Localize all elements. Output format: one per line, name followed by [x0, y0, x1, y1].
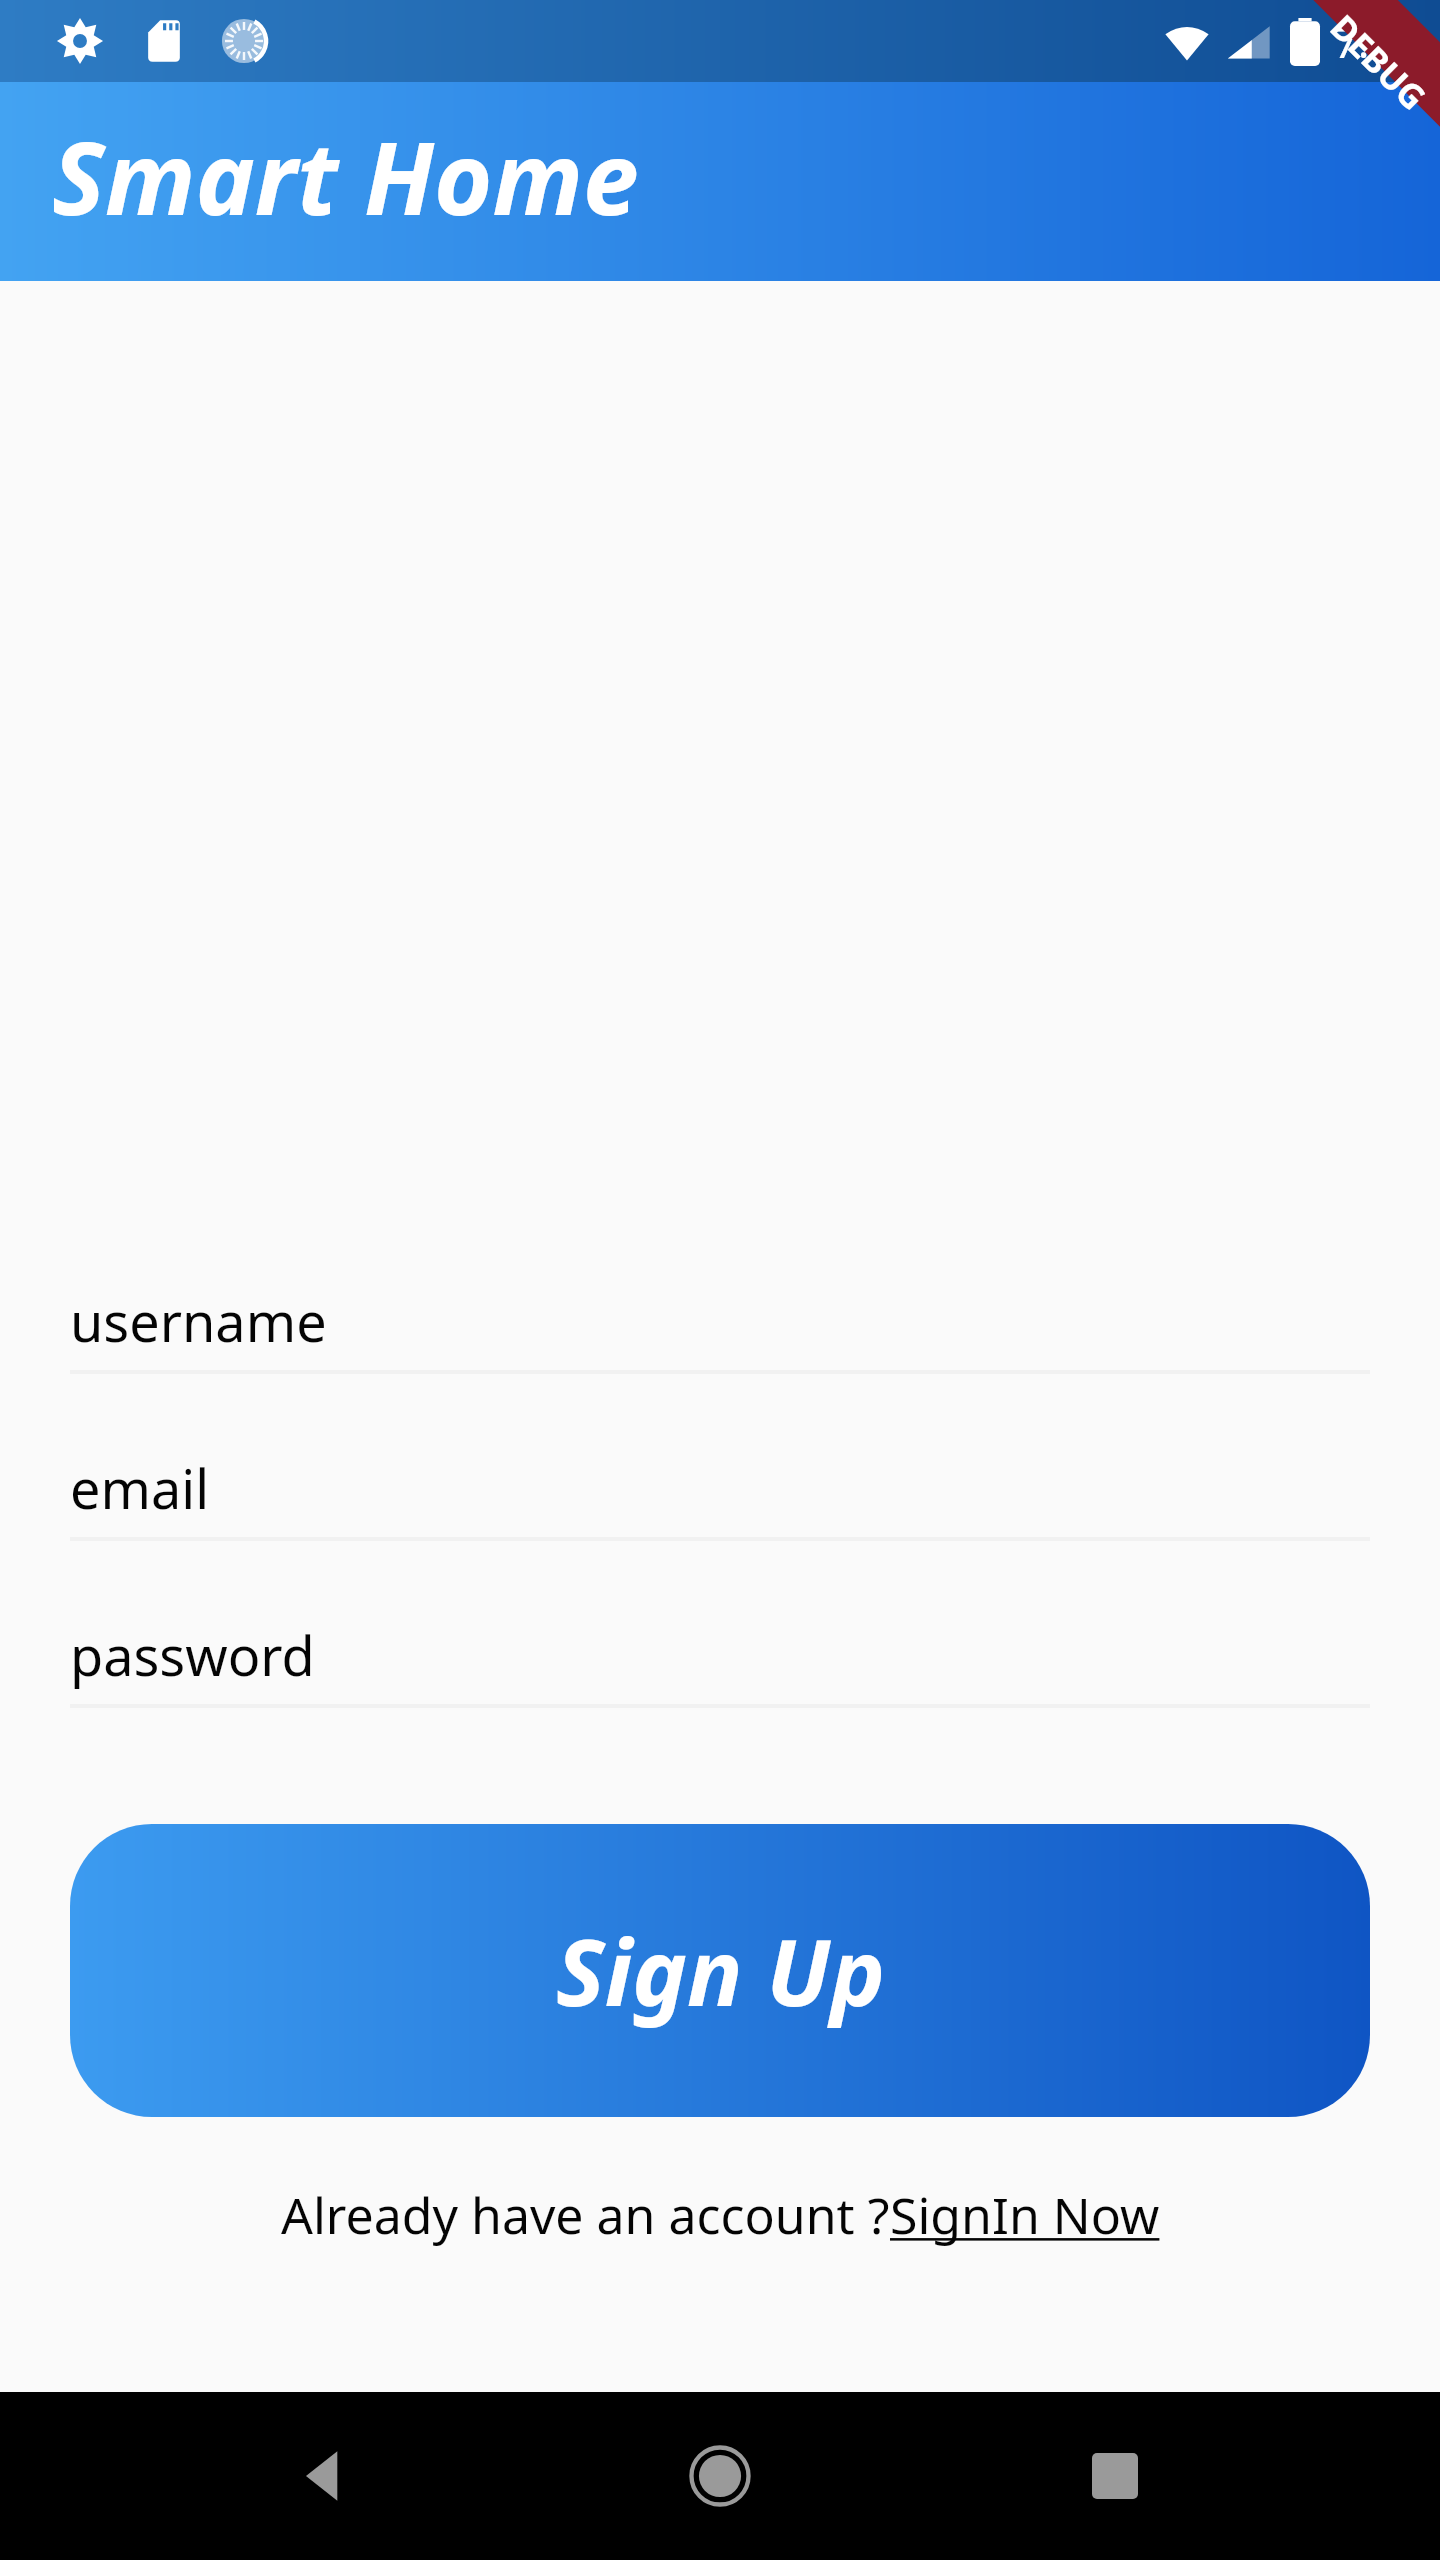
staticText: SignIn Now: [890, 2181, 1160, 2249]
button[interactable]: email: [0, 1438, 1440, 1605]
button[interactable]: Recent apps: [1045, 2406, 1185, 2546]
button[interactable]: password: [0, 1605, 1440, 1772]
staticText: username: [70, 1284, 327, 1358]
staticText: 7:18: [1334, 13, 1418, 70]
button[interactable]: Home: [650, 2406, 790, 2546]
button[interactable]: SignIn Now: [890, 2181, 1160, 2249]
staticText: email: [70, 1451, 210, 1525]
staticText: Sign Up: [556, 1908, 885, 2033]
staticText: Smart Home: [52, 108, 639, 244]
button[interactable]: username: [0, 1271, 1440, 1438]
staticText: password: [70, 1618, 315, 1692]
staticText: DEBUG: [1321, 4, 1436, 120]
staticText: Already have an account ?: [281, 2181, 890, 2249]
button[interactable]: Sign Up: [70, 1824, 1370, 2117]
button[interactable]: Back: [255, 2406, 395, 2546]
